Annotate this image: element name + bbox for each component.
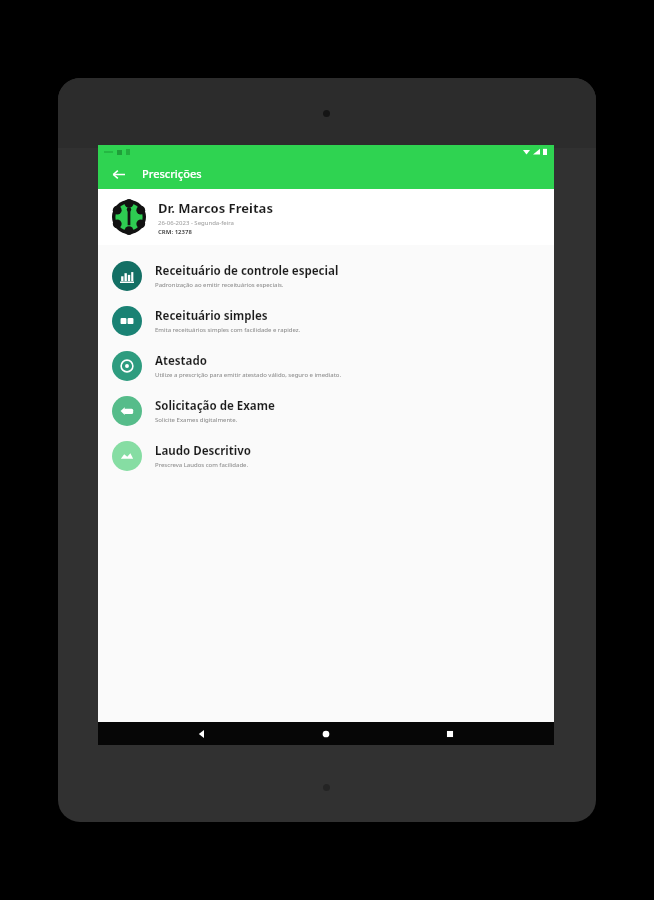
- button[interactable]: Back: [106, 162, 130, 186]
- staticText: 26-06-2023 - Segunda-feira: [158, 219, 234, 227]
- button[interactable]: Solicitação de Exame: [98, 388, 554, 433]
- staticText: Solicitação de Exame: [155, 398, 275, 414]
- button[interactable]: Receituário de controle especial: [98, 253, 554, 298]
- staticText: Laudo Descritivo: [155, 443, 251, 459]
- staticText: Receituário simples: [155, 308, 268, 324]
- button[interactable]: Receituário simples: [98, 298, 554, 343]
- button[interactable]: Back: [182, 722, 222, 745]
- staticText: Emita receituários simples com facilidad…: [155, 326, 301, 334]
- staticText: Utilize a prescrição para emitir atestad…: [155, 371, 342, 379]
- staticText: Solicite Exames digitalmente.: [155, 416, 238, 424]
- staticText: Atestado: [155, 353, 207, 369]
- staticText: CRM: 12378: [158, 228, 192, 236]
- staticText: Dr. Marcos Freitas: [158, 199, 273, 217]
- button[interactable]: Recent apps: [430, 722, 470, 745]
- button[interactable]: Home: [306, 722, 346, 745]
- button[interactable]: Atestado: [98, 343, 554, 388]
- staticText: Padronização ao emitir receituários espe…: [155, 281, 284, 289]
- button[interactable]: Laudo Descritivo: [98, 433, 554, 478]
- staticText: Receituário de controle especial: [155, 263, 339, 279]
- staticText: Prescreva Laudos com facilidade.: [155, 461, 249, 469]
- button[interactable]: Dr. Marcos Freitas: [98, 189, 554, 245]
- staticText: Prescrições: [142, 166, 202, 181]
